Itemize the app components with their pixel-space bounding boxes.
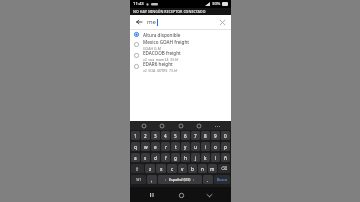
button[interactable]: l [211,153,220,162]
button[interactable]: x [156,164,166,173]
button[interactable]: 5 [171,131,180,140]
button[interactable]: 2 [141,131,150,140]
button[interactable]: EDAR6 height [130,61,231,72]
staticText: Busca [217,177,227,182]
button[interactable]: Mexico GOAH freight [130,39,231,50]
button[interactable]: Herramienta 2 [158,122,166,130]
button[interactable]: p [221,142,230,151]
staticText: d [154,155,157,161]
staticText: 7 [194,133,197,139]
staticText: u [194,144,197,150]
staticText: 3 [154,133,157,139]
button[interactable]: r [161,142,170,151]
staticText: t [175,144,177,150]
staticText: b [191,166,194,172]
button[interactable]: 9 [211,131,220,140]
button[interactable]: !#1 [131,175,146,184]
staticText: j [195,155,197,161]
button[interactable]: i [201,142,210,151]
button[interactable]: Busca [214,175,230,184]
staticText: me [147,18,156,26]
staticText: a [134,155,137,161]
button[interactable]: n [198,164,207,173]
staticText: o [214,144,217,150]
button[interactable]: Atrás [134,17,144,27]
button[interactable]: m [208,164,217,173]
button[interactable]: Borrar [218,18,227,27]
button[interactable]: Atrás [203,189,215,201]
button[interactable]: c [167,164,177,173]
button[interactable]: f [161,153,170,162]
button[interactable]: a [131,153,140,162]
button[interactable]: o [211,142,220,151]
staticText: x [160,166,163,172]
staticText: w [144,144,148,150]
button[interactable]: e [151,142,160,151]
button[interactable]: , [147,175,157,184]
staticText: . [207,177,209,183]
button[interactable]: h [181,153,190,162]
button[interactable]: k [201,153,210,162]
staticText: 2 [144,133,147,139]
button[interactable]: w [141,142,150,151]
staticText: 5 [174,133,177,139]
staticText: Español (US) [169,177,191,182]
staticText: EDAR6 height [143,61,173,67]
button[interactable]: Herramienta 1 [140,122,148,130]
staticText: v2_spa_mpm24_33.hf [143,57,179,61]
button[interactable]: u [191,142,200,151]
button[interactable]: Más opciones [213,122,221,130]
staticText: 4 [164,133,167,139]
staticText: n [201,166,204,172]
staticText: ‹ [165,177,167,182]
staticText: , [151,177,153,183]
staticText: v [181,166,184,172]
button[interactable]: 6 [181,131,190,140]
button[interactable]: v [178,164,187,173]
button[interactable]: ‹ [158,175,202,184]
staticText: Altura disponible [143,32,181,38]
staticText: l [215,155,217,161]
button[interactable]: 1 [131,131,140,140]
button[interactable]: 3 [151,131,160,140]
button[interactable]: b [188,164,197,173]
button[interactable]: 0 [221,131,230,140]
staticText: p [224,144,227,150]
staticText: f [165,155,167,161]
button[interactable]: j [191,153,200,162]
staticText: NO HAY NINGÚN RECEPTOR CONECTADO [133,9,206,14]
button[interactable]: Altura disponible [130,30,231,39]
staticText: r [165,144,167,150]
button[interactable]: d [151,153,160,162]
button[interactable]: s [141,153,150,162]
staticText: › [193,177,195,182]
button[interactable]: Herramienta 3 [177,122,185,130]
button[interactable]: 4 [161,131,170,140]
staticText: EDACOOB freight [143,50,181,56]
staticText: k [204,155,207,161]
button[interactable]: ñ [221,153,230,162]
button[interactable]: EDACOOB freight [130,50,231,61]
button[interactable]: Recientes [146,189,158,201]
staticText: !#1 [136,177,142,182]
staticText: GOAH G-M [143,46,161,50]
button[interactable]: z [145,164,155,173]
button[interactable]: g [171,153,180,162]
button[interactable]: . [203,175,213,184]
staticText: m [210,166,215,172]
staticText: i [205,144,207,150]
button[interactable]: Inicio [175,189,187,201]
staticText: 0 [224,133,227,139]
button[interactable]: y [181,142,190,151]
button[interactable]: 7 [191,131,200,140]
button[interactable]: ⇧ [131,164,144,173]
staticText: ñ [224,155,227,161]
button[interactable]: t [171,142,180,151]
staticText: 11:43 [133,1,144,7]
button[interactable]: q [131,142,140,151]
staticText: z [149,166,152,172]
button[interactable]: 8 [201,131,210,140]
staticText: v2_SQA_4QTRS_73.hf [143,68,178,72]
button[interactable]: ⌫ [218,164,230,173]
button[interactable]: Herramienta 4 [195,122,203,130]
